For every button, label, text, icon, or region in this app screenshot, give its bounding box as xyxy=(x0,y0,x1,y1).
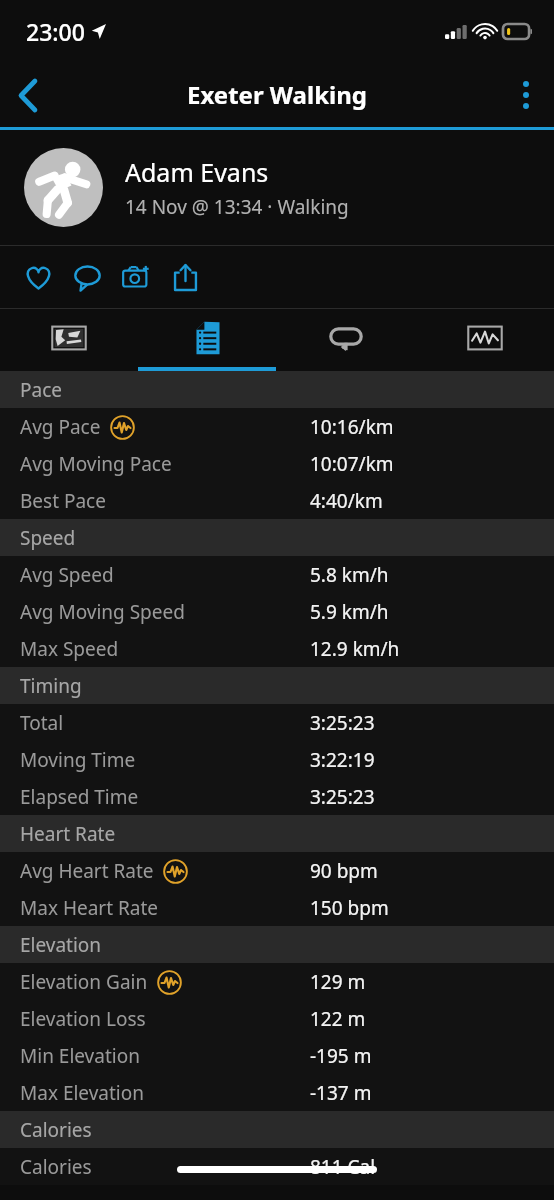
button[interactable]: Like xyxy=(14,253,63,302)
button[interactable]: Min Elevation xyxy=(0,1037,554,1074)
button[interactable]: Avg Moving Speed xyxy=(0,593,554,630)
button[interactable]: Avg Heart Rate xyxy=(0,852,554,889)
staticText: 10:07/km xyxy=(310,451,394,477)
staticText: Timing xyxy=(20,673,82,699)
staticText: Max Heart Rate xyxy=(20,895,159,921)
staticText: Pace xyxy=(20,377,62,403)
staticText: 5.8 km/h xyxy=(310,562,389,588)
staticText: Avg Pace xyxy=(20,414,101,440)
staticText: Moving Time xyxy=(20,747,136,773)
button[interactable]: Moving Time xyxy=(0,741,554,778)
button[interactable]: Adam Evans xyxy=(0,130,554,245)
staticText: 12.9 km/h xyxy=(310,636,400,662)
button[interactable]: Details xyxy=(139,309,277,367)
button[interactable]: Calories xyxy=(0,1148,554,1185)
staticText: Elevation xyxy=(20,932,102,958)
button[interactable]: Comment xyxy=(63,253,112,302)
staticText: Max Elevation xyxy=(20,1080,144,1106)
button[interactable]: Elevation Gain xyxy=(0,963,554,1000)
staticText: 23:00 xyxy=(26,16,85,47)
staticText: Avg Moving Pace xyxy=(20,451,172,477)
staticText: 122 m xyxy=(310,1006,366,1032)
button[interactable]: More options xyxy=(498,67,554,123)
button[interactable]: Share xyxy=(161,253,210,302)
staticText: 129 m xyxy=(310,969,366,995)
staticText: Heart Rate xyxy=(20,821,116,847)
staticText: 4:40/km xyxy=(310,488,383,514)
button[interactable]: Elevation Loss xyxy=(0,1000,554,1037)
button[interactable]: Map xyxy=(0,309,138,367)
staticText: Exeter Walking xyxy=(187,78,367,111)
staticText: Avg Heart Rate xyxy=(20,858,154,884)
button[interactable]: Add photo xyxy=(112,253,161,302)
staticText: Total xyxy=(20,710,64,736)
staticText: 150 bpm xyxy=(310,895,389,921)
button[interactable]: Elapsed Time xyxy=(0,778,554,815)
staticText: 3:25:23 xyxy=(310,710,375,736)
staticText: Min Elevation xyxy=(20,1043,140,1069)
staticText: Calories xyxy=(20,1117,92,1143)
button[interactable]: Back xyxy=(0,67,56,123)
button[interactable]: Laps xyxy=(277,309,415,367)
staticText: 3:22:19 xyxy=(310,747,375,773)
staticText: -137 m xyxy=(310,1080,372,1106)
staticText: Elevation Loss xyxy=(20,1006,146,1032)
button[interactable]: Max Heart Rate xyxy=(0,889,554,926)
staticText: 5.9 km/h xyxy=(310,599,389,625)
button[interactable]: Total xyxy=(0,704,554,741)
button[interactable]: Avg Speed xyxy=(0,556,554,593)
staticText: -195 m xyxy=(310,1043,372,1069)
staticText: Adam Evans xyxy=(125,155,269,189)
staticText: 811 Cal xyxy=(310,1154,376,1180)
staticText: Elapsed Time xyxy=(20,784,139,810)
staticText: 10:16/km xyxy=(310,414,394,440)
staticText: 3:25:23 xyxy=(310,784,375,810)
staticText: Max Speed xyxy=(20,636,119,662)
button[interactable]: Max Elevation xyxy=(0,1074,554,1111)
button[interactable]: Best Pace xyxy=(0,482,554,519)
button[interactable]: Max Speed xyxy=(0,630,554,667)
button[interactable]: Avg Moving Pace xyxy=(0,445,554,482)
staticText: Best Pace xyxy=(20,488,106,514)
staticText: Elevation Gain xyxy=(20,969,148,995)
staticText: Avg Moving Speed xyxy=(20,599,185,625)
button[interactable]: Avg Pace xyxy=(0,408,554,445)
button[interactable]: Graphs xyxy=(416,309,554,367)
staticText: Calories xyxy=(20,1154,92,1180)
staticText: 14 Nov @ 13:34 · Walking xyxy=(125,194,349,220)
staticText: Speed xyxy=(20,525,76,551)
staticText: Avg Speed xyxy=(20,562,114,588)
staticText: 90 bpm xyxy=(310,858,378,884)
